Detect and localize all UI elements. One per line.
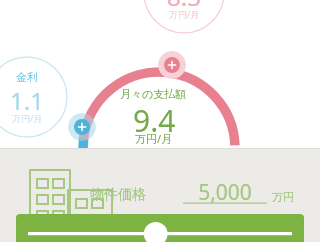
staticText: 万円/月 — [135, 131, 173, 146]
button[interactable]: Increase interest rate — [68, 113, 96, 141]
staticText: 万円/月 — [169, 8, 200, 20]
button[interactable]: 金利 — [0, 56, 68, 138]
staticText: 1.1 — [10, 84, 44, 117]
staticText: 月々の支払額 — [120, 87, 187, 101]
staticText: 5,000 — [198, 178, 252, 204]
staticText: 金利 — [16, 70, 38, 84]
staticText: 9.4 — [133, 100, 176, 141]
button[interactable]: Increase principal — [158, 51, 186, 79]
staticText: 万円 — [272, 190, 294, 204]
button[interactable]: 5,000 — [183, 178, 267, 204]
button[interactable] — [16, 214, 304, 242]
staticText: 万円/月 — [12, 112, 43, 124]
staticText: 物件価格 — [90, 186, 146, 204]
button[interactable]: 元金 — [143, 0, 225, 34]
staticText: 8.3 — [167, 0, 201, 13]
